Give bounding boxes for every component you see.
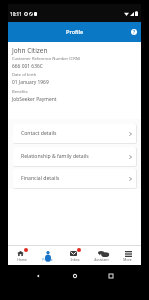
- staticText: Home: [17, 257, 27, 262]
- staticText: Profile: [42, 257, 53, 262]
- staticText: Date of birth: [12, 72, 37, 78]
- button[interactable]: Profile: [34, 245, 61, 265]
- staticText: Customer Reference Number (CRN): [12, 56, 81, 62]
- staticText: 10:11: [10, 11, 22, 17]
- staticText: 01 January 1969: [12, 79, 49, 86]
- staticText: Relationship & family details: [21, 153, 89, 160]
- button[interactable]: Home: [69, 270, 81, 282]
- button[interactable]: Home: [8, 245, 35, 265]
- staticText: Profile: [66, 28, 84, 36]
- button[interactable]: Contact details: [13, 124, 136, 143]
- button[interactable]: Recent apps: [105, 270, 117, 282]
- button[interactable]: Relationship & family details: [13, 147, 136, 166]
- staticText: Benefits: [12, 89, 28, 95]
- button[interactable]: Financial details: [13, 169, 136, 188]
- staticText: Assistant: [94, 257, 109, 262]
- button[interactable]: More: [114, 245, 141, 265]
- button[interactable]: Back: [32, 270, 44, 282]
- staticText: John Citizen: [12, 46, 48, 55]
- staticText: Contact details: [21, 130, 57, 137]
- button[interactable]: Help: [127, 25, 141, 39]
- button[interactable]: Assistant: [88, 245, 115, 265]
- staticText: JobSeeker Payment: [12, 96, 57, 103]
- staticText: 666 001 636C: [12, 63, 43, 70]
- staticText: Inbox: [70, 257, 80, 262]
- button[interactable]: Inbox: [61, 245, 88, 265]
- staticText: More: [123, 257, 132, 262]
- staticText: ?: [133, 29, 136, 35]
- staticText: Financial details: [21, 175, 60, 182]
